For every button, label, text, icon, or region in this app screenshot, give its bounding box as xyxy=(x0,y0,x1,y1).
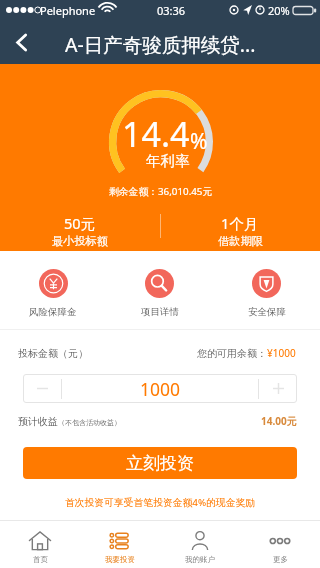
staticText: 风险保障金 xyxy=(29,306,77,318)
button[interactable]: 我要投资 xyxy=(80,521,160,568)
staticText: 更多 xyxy=(273,555,288,564)
staticText: 安全保障 xyxy=(248,306,286,318)
staticText: 1个月 xyxy=(221,213,259,233)
staticText: 首页 xyxy=(33,555,48,564)
button[interactable]: Decrease xyxy=(23,374,61,403)
button[interactable]: 更多 xyxy=(240,521,320,568)
button[interactable]: 安全保障 xyxy=(213,251,320,329)
staticText: 我要投资 xyxy=(105,555,135,564)
staticText: 首次投资可享受首笔投资金额4%的现金奖励 xyxy=(0,496,320,509)
staticText: Pelephone xyxy=(40,3,96,18)
staticText: 我的账户 xyxy=(185,555,215,564)
staticText: 您的可用余额：¥1000 xyxy=(197,346,296,360)
button[interactable]: Back xyxy=(0,20,42,64)
staticText: 立刻投资 xyxy=(126,453,194,474)
staticText: 20% xyxy=(268,3,290,18)
button[interactable]: 风险保障金 xyxy=(0,251,106,329)
staticText: 预计收益（不包含活动收益） xyxy=(18,415,121,428)
staticText: 年利率 xyxy=(146,152,190,170)
staticText: 50元 xyxy=(64,213,96,233)
button[interactable]: 首页 xyxy=(0,521,80,568)
button[interactable]: 我的账户 xyxy=(160,521,240,568)
button[interactable]: 立刻投资 xyxy=(23,447,297,479)
button[interactable]: Increase xyxy=(259,374,297,403)
staticText: A-日产奇骏质押续贷... xyxy=(65,31,256,58)
button[interactable]: 项目详情 xyxy=(106,251,213,329)
staticText: % xyxy=(190,127,208,156)
staticText: 14.00元 xyxy=(261,414,297,428)
staticText: 1000 xyxy=(140,377,181,401)
staticText: 03:36 xyxy=(157,3,186,18)
staticText: 剩余金额：36,010.45元 xyxy=(109,185,213,198)
staticText: 投标金额（元） xyxy=(18,347,88,360)
staticText: 最小投标额 xyxy=(52,234,108,248)
staticText: 14.4 xyxy=(122,111,190,157)
staticText: 借款期限 xyxy=(218,234,263,248)
staticText: 项目详情 xyxy=(141,306,179,318)
